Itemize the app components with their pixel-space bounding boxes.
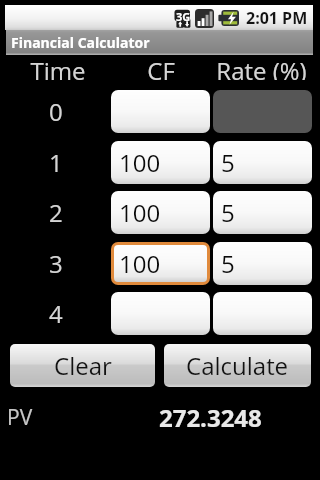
button[interactable]: 100 (111, 141, 210, 184)
staticText: Rate (%) (216, 54, 307, 80)
staticText: 3G (175, 9, 191, 24)
button[interactable]: 100 (111, 242, 210, 285)
staticText: Clear (54, 349, 112, 382)
button[interactable]: 5 (213, 141, 312, 184)
other: 3G network (174, 9, 191, 28)
staticText: 5 (221, 196, 235, 229)
staticText: PV (7, 403, 33, 429)
staticText: 5 (221, 247, 235, 280)
button[interactable]: 100 (111, 191, 210, 234)
button[interactable]: Calculate (164, 344, 311, 387)
staticText: Calculate (186, 349, 289, 382)
button[interactable]: Rate disabled (213, 90, 312, 133)
button[interactable]: Clear (10, 344, 155, 387)
staticText: 0 (49, 95, 63, 128)
staticText: CF (147, 54, 175, 80)
staticText: Financial Calculator (11, 33, 150, 52)
staticText: 272.3248 (159, 401, 262, 427)
button[interactable] (111, 292, 210, 335)
staticText: 3 (49, 247, 63, 280)
button[interactable]: 5 (213, 191, 312, 234)
staticText: 100 (119, 146, 161, 179)
button[interactable] (213, 292, 312, 335)
staticText: Time (30, 54, 86, 80)
staticText: 100 (119, 196, 161, 229)
staticText: 2 (49, 196, 63, 229)
staticText: 100 (119, 247, 161, 280)
staticText: 4 (49, 297, 63, 330)
other: Battery charging (220, 10, 239, 26)
staticText: 2:01 PM (246, 7, 308, 29)
button[interactable]: 5 (213, 242, 312, 285)
other: Signal strength (195, 9, 214, 28)
button[interactable] (111, 90, 210, 133)
staticText: 5 (221, 146, 235, 179)
staticText: 1 (49, 146, 63, 179)
